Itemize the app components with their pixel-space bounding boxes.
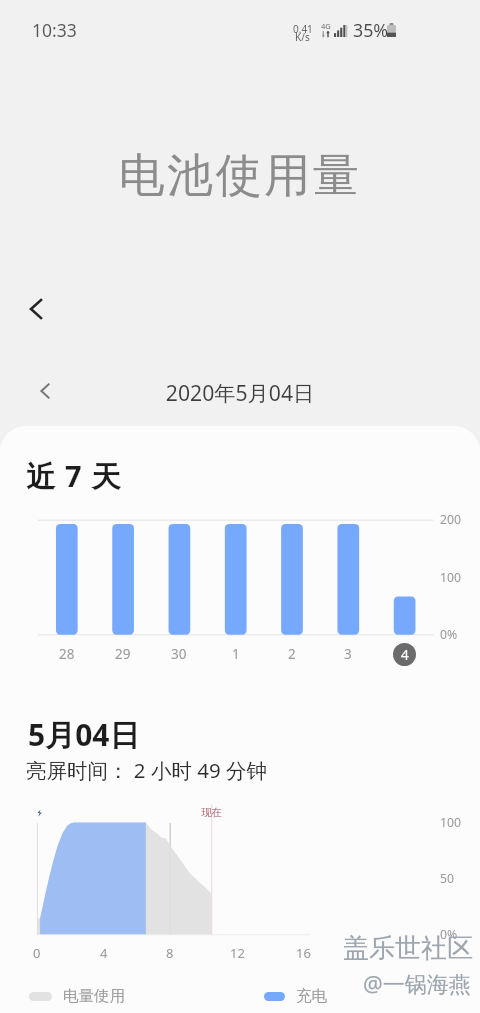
staticText: 盖乐世社区 (343, 932, 473, 965)
staticText: 12 (230, 944, 245, 962)
staticText: 5月04日 (28, 714, 140, 755)
staticText: 电池使用量 (0, 147, 480, 205)
staticText: 现在 (201, 806, 222, 819)
button[interactable]: Previous day (23, 369, 67, 413)
staticText: 0.41 (293, 22, 313, 36)
staticText: 0% (440, 626, 458, 643)
staticText: K/s (295, 30, 310, 44)
staticText: 35% (353, 18, 389, 42)
staticText: 200 (440, 511, 462, 528)
staticText: 50 (440, 870, 455, 887)
staticText: @一锅海燕 (363, 968, 471, 998)
staticText: 1 (232, 645, 240, 663)
staticText: 30 (171, 645, 187, 663)
staticText: 4 (401, 646, 409, 664)
staticText: 亮屏时间： 2 小时 49 分钟 (26, 756, 267, 784)
staticText: 4 (100, 944, 108, 962)
button[interactable]: 4 (393, 643, 416, 666)
staticText: 4G (321, 21, 331, 31)
staticText: 3 (344, 645, 352, 663)
staticText: 100 (440, 569, 462, 586)
staticText: 28 (59, 645, 75, 663)
staticText: 8 (166, 944, 174, 962)
staticText: 0% (440, 926, 458, 943)
staticText: 100 (440, 814, 462, 831)
staticText: 2 (288, 645, 296, 663)
staticText: 29 (115, 645, 131, 663)
button[interactable]: Back (14, 287, 58, 331)
button[interactable]: 电量使用 (29, 986, 125, 1006)
staticText: 16 (296, 944, 311, 962)
staticText: 0 (33, 944, 41, 962)
staticText: 充电 (296, 986, 327, 1006)
staticText: 10:33 (32, 18, 77, 42)
staticText: 电量使用 (63, 986, 125, 1006)
staticText: 近 7 天 (26, 456, 122, 496)
staticText: 2020年5月04日 (0, 378, 480, 407)
button[interactable]: 充电 (264, 986, 327, 1006)
